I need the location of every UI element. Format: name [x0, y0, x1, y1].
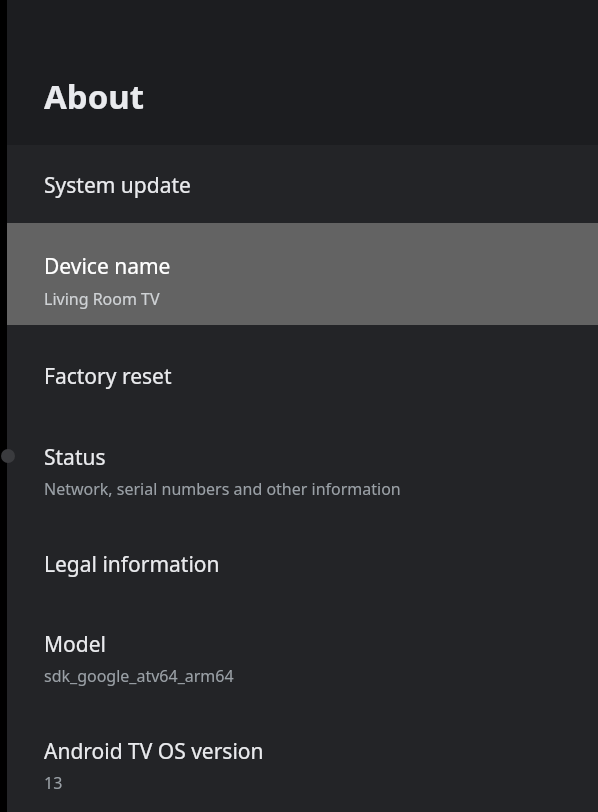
staticText: System update [44, 171, 191, 200]
staticText: Factory reset [44, 362, 172, 391]
staticText: Android TV OS version [44, 737, 264, 766]
staticText: About [44, 74, 145, 119]
button[interactable]: System update [0, 145, 598, 223]
button[interactable]: Android TV OS version [0, 721, 598, 812]
staticText: Model [44, 630, 106, 659]
staticText: Device name [44, 252, 171, 281]
button[interactable]: Status [0, 423, 598, 523]
staticText: 13 [44, 772, 63, 794]
button[interactable]: Device name [0, 223, 598, 325]
button[interactable]: Model [0, 621, 598, 721]
button[interactable]: Factory reset [0, 325, 598, 423]
staticText: sdk_google_atv64_arm64 [44, 665, 234, 687]
button[interactable]: Legal information [0, 523, 598, 621]
staticText: Network, serial numbers and other inform… [44, 478, 401, 500]
staticText: Status [44, 443, 106, 472]
staticText: Legal information [44, 550, 220, 579]
staticText: Living Room TV [44, 288, 160, 310]
